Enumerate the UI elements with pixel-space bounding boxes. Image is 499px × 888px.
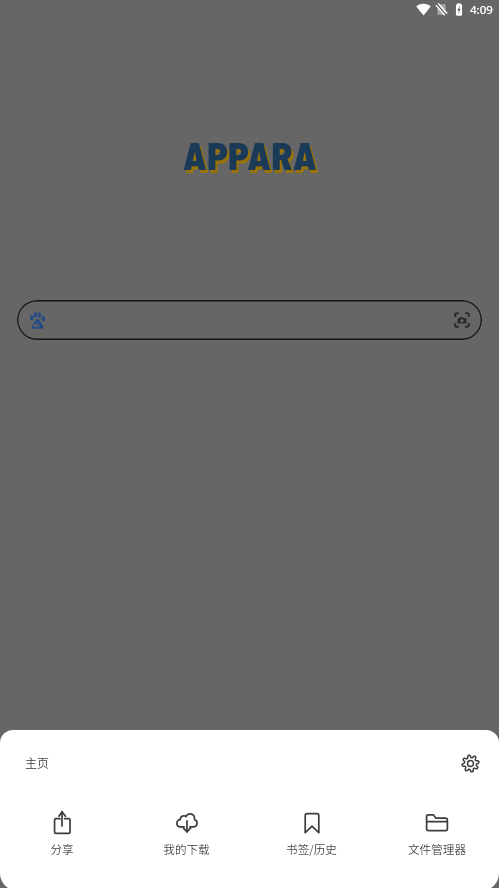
staticText: 4:09: [470, 2, 493, 18]
staticText: APPARA: [185, 135, 320, 181]
staticText: 文件管理器: [408, 841, 466, 858]
staticText: APPARA: [183, 132, 318, 178]
button[interactable]: 我的下载: [124, 795, 249, 858]
staticText: 主页: [25, 754, 50, 771]
staticText: 分享: [50, 841, 74, 858]
button[interactable]: Settings: [453, 746, 488, 781]
staticText: 我的下载: [163, 841, 210, 858]
staticText: 书签/历史: [286, 841, 337, 858]
button[interactable]: [17, 300, 482, 340]
button[interactable]: 书签/历史: [249, 795, 374, 858]
button[interactable]: 分享: [0, 795, 124, 858]
button[interactable]: 文件管理器: [374, 795, 499, 858]
